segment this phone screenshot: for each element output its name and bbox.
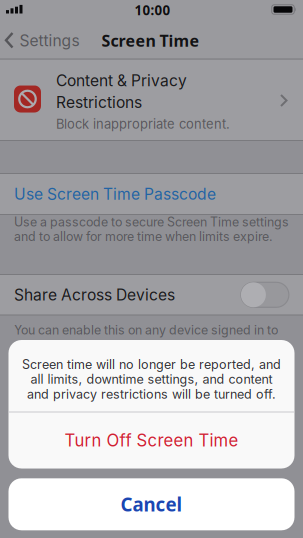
- staticText: Screen time will no longer be reported, …: [22, 357, 281, 372]
- button[interactable]: Cancel: [8, 478, 294, 530]
- button[interactable]: Use Screen Time Passcode: [0, 173, 303, 214]
- staticText: Settings: [19, 31, 79, 50]
- staticText: Share Across Devices: [14, 285, 175, 304]
- staticText: Turn Off Screen Time: [64, 430, 238, 451]
- button[interactable]: Back to Settings: [4, 20, 79, 60]
- staticText: Block inappropriate content.: [56, 116, 230, 132]
- staticText: and privacy restrictions will be turned …: [27, 386, 276, 402]
- staticText: You can enable this on any device signed…: [14, 322, 278, 337]
- staticText: Cancel: [120, 492, 182, 517]
- staticText: Use Screen Time Passcode: [14, 185, 216, 203]
- button[interactable]: Turn Off Screen Time: [8, 412, 294, 468]
- staticText: Screen Time: [101, 30, 199, 51]
- staticText: Restrictions: [56, 93, 142, 112]
- button[interactable]: Content & Privacy: [0, 59, 303, 140]
- staticText: 10:00: [134, 1, 170, 19]
- button[interactable]: Share Across Devices: [241, 282, 289, 307]
- staticText: and to allow for more time when limits e…: [14, 229, 273, 244]
- staticText: Content & Privacy: [56, 71, 187, 90]
- staticText: Use a passcode to secure Screen Time set…: [14, 214, 289, 229]
- staticText: all limits, downtime settings, and conte…: [30, 372, 272, 387]
